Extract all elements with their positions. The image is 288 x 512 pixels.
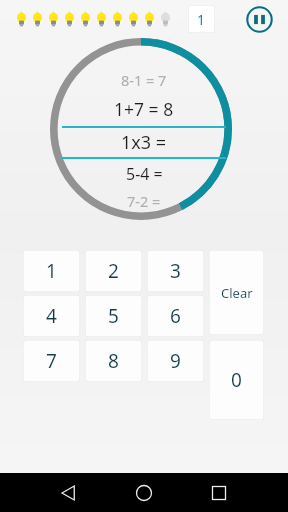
- staticText: 8: [108, 348, 119, 374]
- button[interactable]: Clear: [209, 250, 264, 335]
- staticText: 7: [46, 348, 57, 374]
- staticText: 2: [108, 258, 119, 284]
- button[interactable]: Home: [129, 478, 159, 508]
- button[interactable]: Recent apps: [204, 478, 234, 508]
- staticText: 0: [231, 367, 242, 393]
- button[interactable]: 4: [23, 295, 80, 337]
- staticText: 3: [170, 258, 181, 284]
- button[interactable]: Back: [54, 478, 84, 508]
- staticText: 7-2 =: [127, 191, 161, 211]
- button[interactable]: 7: [23, 340, 80, 382]
- button[interactable]: 5: [85, 295, 142, 337]
- staticText: 5: [108, 303, 119, 329]
- staticText: 1: [46, 258, 57, 284]
- button[interactable]: 1: [188, 5, 215, 33]
- staticText: 5-4 =: [126, 163, 163, 185]
- button[interactable]: 9: [147, 340, 204, 382]
- staticText: 1: [197, 10, 206, 29]
- button[interactable]: 1: [23, 250, 80, 292]
- button[interactable]: 3: [147, 250, 204, 292]
- staticText: 4: [46, 303, 57, 329]
- button[interactable]: 2: [85, 250, 142, 292]
- button[interactable]: 0: [209, 340, 264, 420]
- button[interactable]: 8: [85, 340, 142, 382]
- staticText: 9: [170, 348, 181, 374]
- button[interactable]: 6: [147, 295, 204, 337]
- staticText: Clear: [221, 284, 253, 302]
- button[interactable]: Pause: [244, 4, 274, 34]
- staticText: 1x3 =: [121, 130, 167, 155]
- staticText: 1+7 = 8: [114, 97, 174, 121]
- staticText: 8-1 = 7: [121, 70, 167, 90]
- staticText: 6: [170, 303, 181, 329]
